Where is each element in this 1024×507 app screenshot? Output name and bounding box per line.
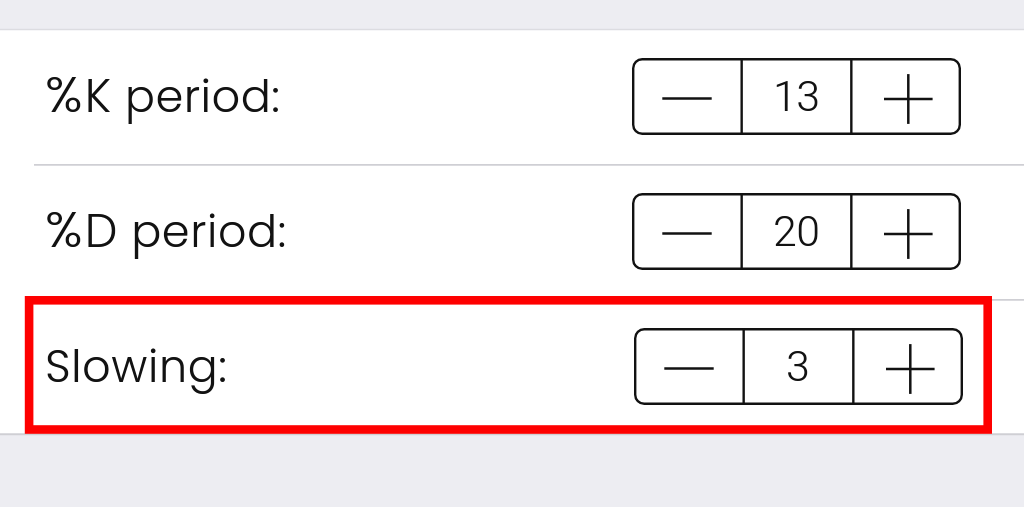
staticText: 20 (773, 207, 820, 256)
button[interactable]: Increase Slowing: (853, 328, 963, 405)
staticText: %K period: (45, 64, 281, 130)
button[interactable]: 3 (743, 328, 853, 405)
button[interactable]: Decrease %K period: (632, 58, 741, 135)
staticText: 20 (773, 207, 820, 256)
button[interactable]: Decrease %D period: (632, 193, 741, 270)
staticText: 13 (773, 72, 820, 121)
staticText: %D period: (45, 199, 287, 265)
button[interactable]: Decrease Slowing: (634, 328, 743, 405)
staticText: 13 (773, 72, 820, 121)
staticText: %D period: (45, 199, 287, 265)
button[interactable]: 13 (741, 58, 851, 135)
staticText: 3 (786, 342, 810, 391)
button[interactable]: %D period: (0, 164, 1024, 299)
button[interactable]: Increase %D period: (851, 193, 961, 270)
button[interactable]: Increase %K period: (851, 58, 961, 135)
button[interactable]: 20 (741, 193, 851, 270)
button[interactable]: %K period: (0, 29, 1024, 164)
staticText: Slowing: (45, 334, 228, 400)
staticText: %K period: (45, 64, 281, 130)
button[interactable]: Slowing: (0, 299, 1024, 434)
staticText: Slowing: (45, 334, 228, 400)
staticText: 3 (786, 342, 810, 391)
